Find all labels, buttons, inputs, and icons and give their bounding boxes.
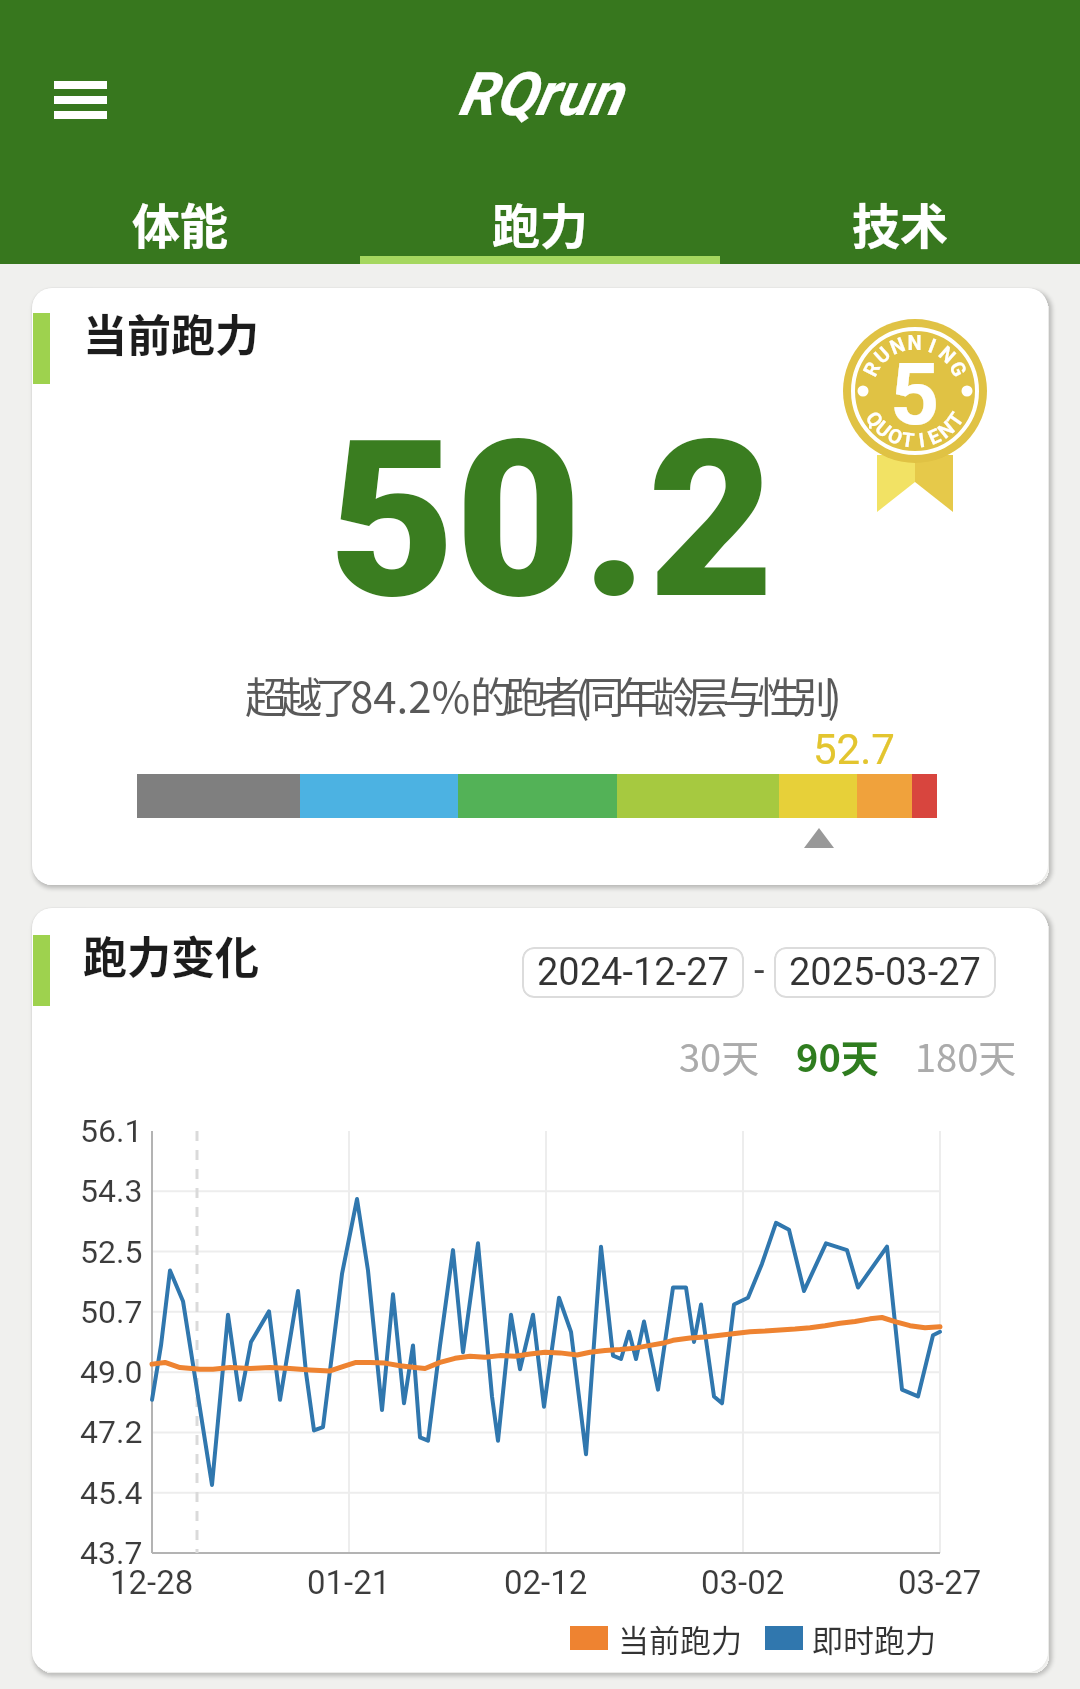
button[interactable]: 2024-12-27 [522,947,744,998]
button[interactable] [40,66,120,134]
staticText: 30天 [679,1028,760,1083]
button[interactable]: 体能 [0,186,360,264]
staticText: 90天 [796,1028,879,1083]
staticText: 技术 [852,188,949,258]
staticText: RQrun [458,59,622,129]
staticText: 52.7 [813,725,895,774]
staticText: 2025-03-27 [789,950,981,995]
button[interactable]: 跑力 [360,186,720,264]
staticText: 180天 [915,1028,1017,1083]
button[interactable]: 30天 [679,1028,760,1083]
staticText: 跑力 [492,188,589,258]
button[interactable]: 180天 [915,1028,1017,1083]
button[interactable]: 90天 [796,1028,879,1083]
staticText: 跑力变化 [83,923,259,987]
staticText: 50.2 [329,393,775,648]
button[interactable]: 技术 [720,186,1080,264]
staticText: 超越了84.2%的跑者(同年龄层与性别) [245,664,835,725]
staticText: 体能 [132,188,229,258]
staticText: 2024-12-27 [537,950,729,995]
staticText: - [754,948,765,993]
staticText: 当前跑力 [83,301,259,365]
button[interactable]: 当前跑力 [32,288,1048,885]
button[interactable]: 2025-03-27 [774,947,996,998]
